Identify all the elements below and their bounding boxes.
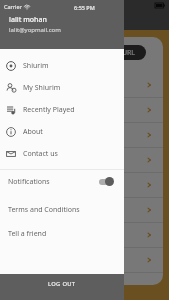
staticText: Bamidbar [16, 155, 53, 166]
other: Notifications toggle [98, 177, 114, 186]
staticText: Shiurim [23, 61, 49, 71]
button[interactable]: Contact us [0, 143, 124, 165]
button[interactable]: Kesuvim [6, 223, 163, 247]
button[interactable]: Devarim [6, 173, 163, 197]
button[interactable]: Shemos [6, 98, 163, 122]
staticText: Shiurim [16, 48, 57, 63]
button[interactable]: My Shiurim [0, 77, 124, 99]
staticText: Bereishis [16, 80, 51, 91]
button[interactable]: LOG OUT [0, 274, 124, 300]
staticText: Kesuvim [16, 230, 48, 241]
staticText: Notifications [8, 177, 50, 187]
button[interactable]: Recently Played [0, 99, 124, 121]
staticText: Neviim [16, 205, 43, 216]
button[interactable]: About [0, 121, 124, 143]
button[interactable]: Tell a friend [0, 227, 124, 241]
staticText: Devarim [16, 180, 48, 191]
staticText: Terms and Conditions [8, 205, 80, 215]
staticText: Shemos [16, 105, 46, 116]
button[interactable]: Vayikra [6, 123, 163, 147]
staticText: Recently Played [23, 105, 75, 115]
button[interactable]: Neviim [6, 198, 163, 222]
staticText: Carrier [4, 3, 22, 10]
button[interactable]: Notifications [0, 170, 124, 193]
staticText: About [23, 127, 43, 137]
staticText: Vayikra [16, 130, 44, 141]
button[interactable]: Shiurim [0, 55, 124, 77]
staticText: 6:55 PM [74, 4, 95, 11]
button[interactable]: Bereishis [6, 73, 163, 97]
staticText: lalit@yopmail.com [9, 26, 61, 34]
staticText: Add URL [107, 48, 136, 58]
staticText: Tell a friend [8, 229, 47, 239]
button[interactable]: Terms and Conditions [0, 203, 124, 217]
button[interactable]: Bamidbar [6, 148, 163, 172]
button[interactable]: Mishnayos [6, 248, 163, 272]
staticText: Contact us [23, 149, 58, 159]
staticText: My Shiurim [23, 83, 61, 93]
staticText: lalit mohan [9, 15, 47, 25]
button[interactable]: Add URL [97, 45, 146, 60]
staticText: LOG OUT [48, 280, 76, 288]
